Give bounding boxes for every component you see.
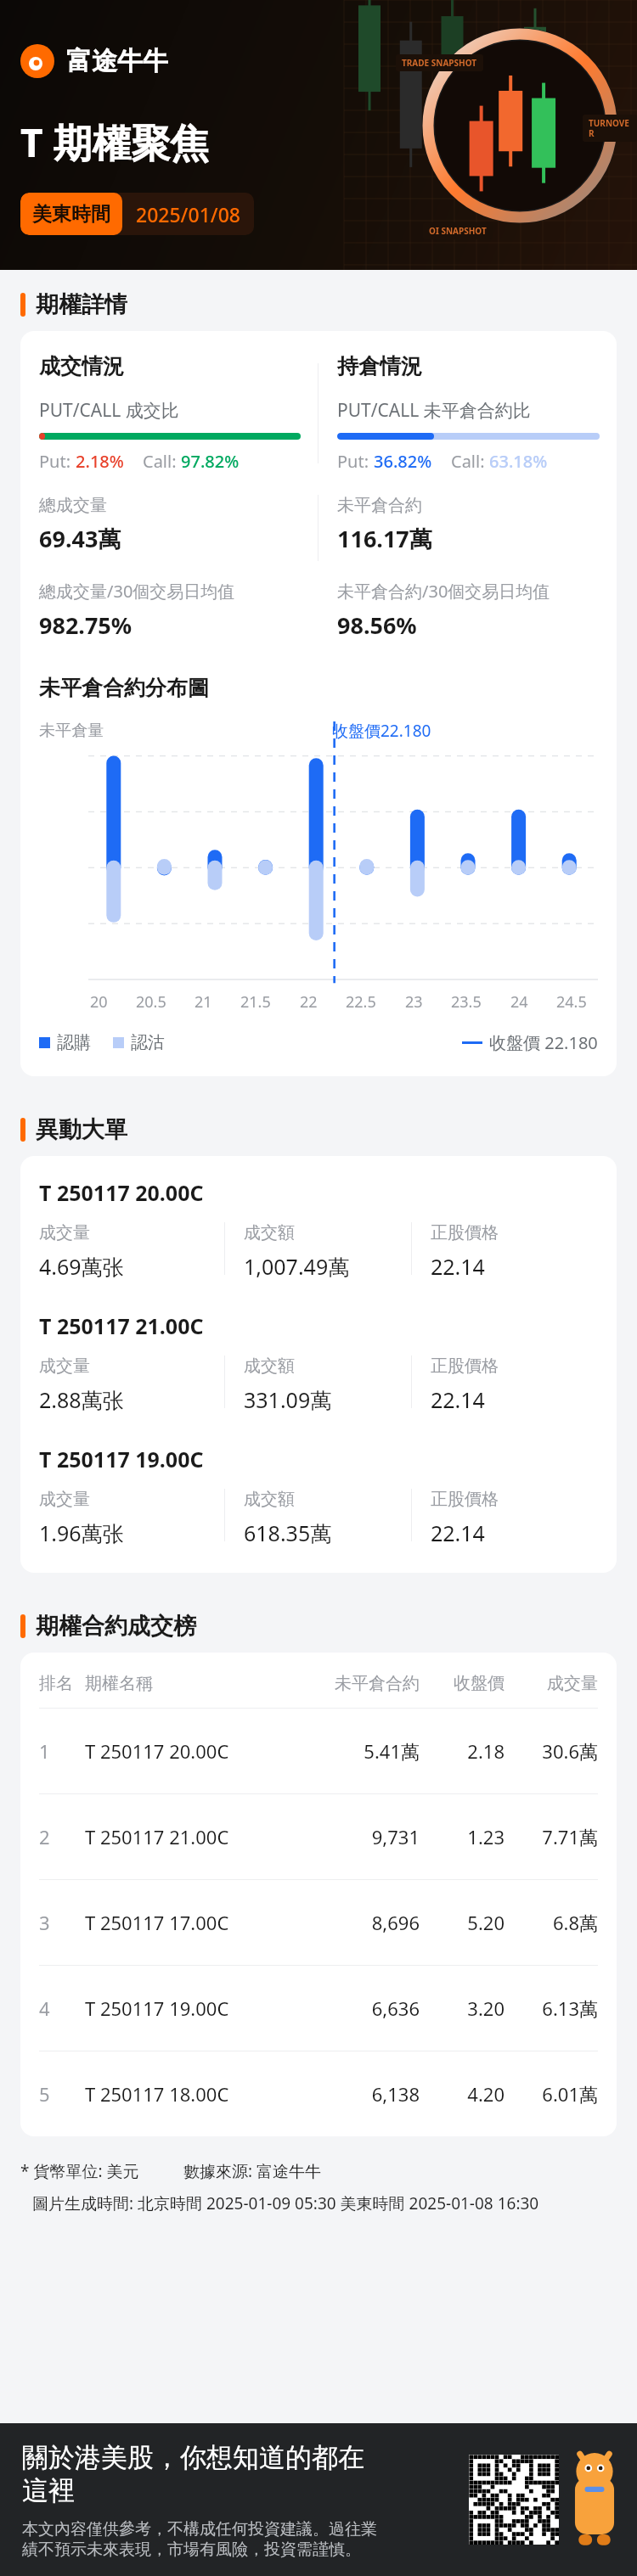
staticText: 1.96萬张 (39, 1518, 124, 1547)
staticText: TURNOVER (589, 117, 631, 139)
staticText: 成交額 (244, 1355, 295, 1377)
staticText: 1,007.49萬 (244, 1252, 350, 1281)
staticText: 數據來源: 富途牛牛 (183, 2160, 322, 2182)
staticText: 總成交量 (39, 495, 107, 516)
staticText: 23 (405, 991, 423, 1013)
button[interactable]: T 250117 21.00C (20, 1311, 617, 1414)
staticText: 4.20 (420, 2081, 505, 2107)
staticText: 未平倉合約分布圖 (39, 675, 209, 701)
staticText: 2.18 (420, 1738, 505, 1764)
staticText: 20.5 (136, 991, 166, 1013)
staticText: 116.17萬 (337, 523, 432, 554)
staticText: 21 (194, 991, 212, 1013)
staticText: 認沽 (131, 1032, 165, 1053)
staticText: 認購 (57, 1032, 91, 1053)
staticText: 成交量 (39, 1489, 90, 1510)
staticText: 本文內容僅供參考，不構成任何投資建議。過往業績不預示未來表現，市場有風險，投資需… (22, 2519, 382, 2559)
staticText: 98.56% (337, 609, 417, 641)
staticText: PUT/CALL 未平倉合約比 (337, 398, 531, 423)
staticText: 期權合約成交榜 (36, 1612, 196, 1641)
staticText: 4.69萬张 (39, 1252, 124, 1281)
staticText: 23.5 (451, 991, 482, 1013)
button[interactable]: 4 (20, 1966, 617, 2051)
staticText: 21.5 (240, 991, 271, 1013)
staticText: 未平倉合約/30個交易日均值 (337, 580, 550, 603)
staticText: 成交情況 (39, 353, 124, 379)
staticText: 3 (39, 1910, 85, 1935)
staticText: 期權名稱 (85, 1673, 309, 1694)
staticText: T 250117 19.00C (85, 1995, 309, 2021)
staticText: 331.09萬 (244, 1385, 332, 1414)
staticText: 982.75% (39, 609, 132, 641)
staticText: T 250117 19.00C (39, 1445, 204, 1473)
button[interactable]: T 250117 19.00C (20, 1445, 617, 1547)
button[interactable]: 3 (20, 1880, 617, 1965)
staticText: 收盤價22.180 (332, 720, 431, 742)
staticText: 異動大單 (36, 1115, 127, 1144)
staticText: 22.14 (431, 1252, 485, 1281)
staticText: 正股價格 (431, 1222, 499, 1243)
staticText: 5 (39, 2081, 85, 2107)
staticText: 24 (510, 991, 528, 1013)
staticText: T 250117 17.00C (85, 1910, 309, 1935)
staticText: 5.41萬 (309, 1738, 420, 1764)
staticText: Put: (337, 450, 374, 473)
staticText: 30.6萬 (505, 1738, 598, 1764)
staticText: 正股價格 (431, 1489, 499, 1510)
staticText: 未平倉合約 (337, 495, 422, 516)
staticText: T 250117 21.00C (85, 1824, 309, 1849)
staticText: 6.8萬 (505, 1910, 598, 1935)
staticText: 3.20 (420, 1995, 505, 2021)
staticText: 1 (39, 1738, 85, 1764)
staticText: 63.18% (489, 450, 548, 473)
staticText: 6.13萬 (505, 1995, 598, 2021)
staticText: Put: (39, 450, 76, 473)
staticText: 6,138 (309, 2081, 420, 2107)
staticText: 2.88萬张 (39, 1385, 124, 1414)
staticText: 成交量 (39, 1355, 90, 1377)
staticText: 6,636 (309, 1995, 420, 2021)
button[interactable]: 美東時間 (20, 193, 254, 235)
staticText: T 250117 18.00C (85, 2081, 309, 2107)
button[interactable]: 1 (20, 1709, 617, 1793)
staticText: 成交額 (244, 1489, 295, 1510)
staticText: 22.14 (431, 1518, 485, 1547)
staticText: 7.71萬 (505, 1824, 598, 1849)
staticText: 2025/01/08 (136, 201, 240, 227)
staticText: 2.18% (76, 450, 124, 473)
button[interactable]: T 250117 20.00C (20, 1178, 617, 1281)
staticText: T 250117 21.00C (39, 1311, 204, 1340)
staticText: 成交量 (39, 1222, 90, 1243)
staticText: 圖片生成時間: 北京時間 2025-01-09 05:30 美東時間 2025-… (32, 2192, 539, 2214)
staticText: Call: (143, 450, 181, 473)
staticText: 成交量 (505, 1673, 598, 1694)
staticText: 收盤價 22.180 (489, 1031, 598, 1054)
staticText: 97.82% (181, 450, 240, 473)
staticText: 期權詳情 (36, 290, 127, 319)
staticText: 正股價格 (431, 1355, 499, 1377)
button[interactable]: 5 (20, 2051, 617, 2136)
staticText: 8,696 (309, 1910, 420, 1935)
staticText: 22.14 (431, 1385, 485, 1414)
staticText: 總成交量/30個交易日均值 (39, 580, 235, 603)
staticText: 36.82% (374, 450, 432, 473)
staticText: 2 (39, 1824, 85, 1849)
staticText: 未平倉量 (39, 721, 104, 741)
staticText: * 貨幣單位: 美元 (20, 2160, 139, 2182)
staticText: 69.43萬 (39, 523, 121, 554)
staticText: OI SNAPSHOT (429, 225, 487, 237)
staticText: 收盤價 (420, 1673, 505, 1694)
button[interactable]: 2 (20, 1794, 617, 1879)
staticText: 持倉情況 (337, 353, 422, 379)
staticText: 20 (90, 991, 108, 1013)
staticText: 6.01萬 (505, 2081, 598, 2107)
staticText: 618.35萬 (244, 1518, 332, 1547)
staticText: 成交額 (244, 1222, 295, 1243)
staticText: 22 (300, 991, 318, 1013)
staticText: 富途牛牛 (66, 45, 168, 77)
staticText: T 250117 20.00C (85, 1738, 309, 1764)
staticText: T 250117 20.00C (39, 1178, 204, 1207)
staticText: 4 (39, 1995, 85, 2021)
staticText: PUT/CALL 成交比 (39, 398, 179, 423)
staticText: 24.5 (556, 991, 587, 1013)
